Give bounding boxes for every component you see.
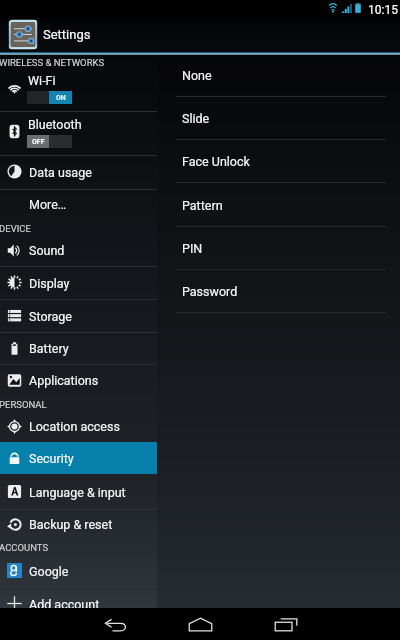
button[interactable]: PIN	[157, 227, 400, 270]
staticText: Face Unlock	[182, 154, 250, 169]
staticText: Storage	[29, 309, 72, 324]
button[interactable]: None	[157, 54, 400, 97]
button[interactable]: Password	[157, 270, 400, 313]
button[interactable]: Language & input	[0, 475, 157, 508]
button[interactable]: Home	[176, 608, 224, 640]
staticText: Data usage	[29, 165, 92, 180]
staticText: Bluetooth	[28, 117, 82, 132]
button[interactable]: Storage	[0, 299, 157, 332]
staticText: Add account	[29, 597, 100, 612]
button[interactable]: Location access	[0, 410, 157, 442]
staticText: Pattern	[182, 198, 223, 213]
button[interactable]: Backup & reset	[0, 508, 157, 540]
staticText: More…	[29, 197, 67, 212]
button[interactable]: Back	[91, 608, 139, 640]
staticText: Google	[29, 564, 69, 579]
button[interactable]: Wi-Fi	[0, 68, 157, 111]
staticText: None	[182, 68, 212, 83]
button[interactable]: Add account	[0, 587, 157, 620]
button[interactable]: Recent apps	[262, 608, 310, 640]
staticText: Password	[182, 284, 238, 299]
button[interactable]: Data usage	[0, 155, 157, 188]
staticText: Settings	[43, 27, 91, 42]
staticText: Wi-Fi	[28, 73, 56, 88]
staticText: Backup & reset	[29, 517, 113, 532]
staticText: Battery	[29, 341, 69, 356]
button[interactable]: Bluetooth	[0, 112, 157, 155]
staticText: PIN	[182, 241, 203, 256]
staticText: 10:15	[368, 3, 398, 17]
button[interactable]: Battery	[0, 332, 157, 364]
staticText: Language & input	[29, 485, 126, 500]
button[interactable]: Display	[0, 266, 157, 299]
staticText: Location access	[29, 419, 120, 434]
button[interactable]: Sound	[0, 234, 157, 266]
button[interactable]: Slide	[157, 97, 400, 140]
staticText: Sound	[29, 243, 65, 258]
staticText: Security	[29, 451, 74, 466]
staticText: ACCOUNTS	[0, 542, 49, 553]
button[interactable]: Google	[0, 554, 157, 587]
staticText: Slide	[182, 111, 210, 126]
staticText: WIRELESS & NETWORKS	[0, 57, 105, 68]
staticText: Display	[29, 276, 70, 291]
staticText: OFF	[32, 138, 45, 146]
button[interactable]: Applications	[0, 364, 157, 396]
button[interactable]: Pattern	[157, 184, 400, 227]
staticText: Applications	[29, 373, 99, 388]
button[interactable]: Security	[0, 442, 157, 474]
staticText: DEVICE	[0, 223, 31, 234]
staticText: PERSONAL	[0, 399, 47, 410]
staticText: ON	[56, 94, 66, 102]
button[interactable]: Settings	[0, 17, 400, 55]
button[interactable]: Face Unlock	[157, 140, 400, 183]
button[interactable]: More…	[0, 188, 157, 220]
